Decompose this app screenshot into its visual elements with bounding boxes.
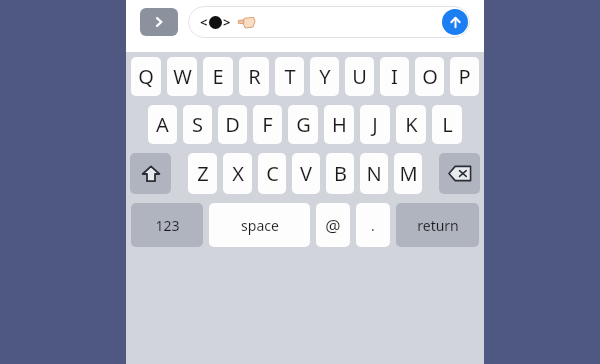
button[interactable]: K	[396, 105, 426, 144]
staticText: K	[405, 111, 418, 138]
staticText: M	[399, 160, 418, 187]
staticText: .	[371, 216, 375, 235]
button[interactable]: return	[396, 203, 479, 247]
button[interactable]: E	[203, 57, 233, 96]
button[interactable]: Shift	[130, 153, 171, 194]
button[interactable]: L	[432, 105, 462, 144]
staticText: V	[300, 160, 312, 187]
button[interactable]: D	[218, 105, 247, 144]
button[interactable]: <	[188, 6, 470, 38]
staticText: P	[458, 63, 471, 90]
button[interactable]: Y	[310, 57, 339, 96]
staticText: F	[262, 111, 273, 138]
button[interactable]: J	[360, 105, 390, 144]
button[interactable]: S	[183, 105, 212, 144]
button[interactable]: C	[258, 153, 286, 194]
staticText: space	[241, 216, 279, 235]
button[interactable]: M	[394, 153, 422, 194]
staticText: Y	[319, 63, 331, 90]
staticText: L	[442, 111, 453, 138]
button[interactable]: 123	[131, 203, 203, 247]
staticText: 123	[155, 216, 180, 235]
staticText: C	[266, 160, 279, 187]
button[interactable]: Z	[188, 153, 217, 194]
staticText: I	[391, 63, 398, 90]
button[interactable]: X	[223, 153, 252, 194]
staticText: Q	[138, 63, 154, 90]
button[interactable]: U	[345, 57, 374, 96]
staticText: B	[334, 160, 347, 187]
button[interactable]: P	[450, 57, 479, 96]
staticText: G	[296, 111, 311, 138]
button[interactable]: .	[356, 203, 390, 247]
button[interactable]: F	[253, 105, 282, 144]
button[interactable]: Expand apps	[140, 8, 178, 36]
staticText: T	[284, 63, 296, 90]
button[interactable]: Backspace	[439, 153, 480, 194]
button[interactable]: H	[324, 105, 354, 144]
staticText: A	[156, 111, 169, 138]
button[interactable]: T	[275, 57, 304, 96]
button[interactable]: V	[292, 153, 320, 194]
staticText: S	[192, 111, 203, 138]
button[interactable]: A	[148, 105, 177, 144]
button[interactable]: B	[326, 153, 354, 194]
button[interactable]: N	[360, 153, 388, 194]
staticText: H	[332, 111, 347, 138]
button[interactable]: O	[415, 57, 444, 96]
staticText: O	[422, 63, 438, 90]
button[interactable]: G	[288, 105, 318, 144]
staticText: return	[417, 216, 459, 235]
staticText: @	[325, 214, 341, 237]
staticText: U	[352, 63, 367, 90]
staticText: N	[366, 160, 382, 187]
staticText: R	[248, 63, 261, 90]
button[interactable]: Q	[131, 57, 161, 96]
staticText: <	[200, 13, 208, 31]
button[interactable]: space	[209, 203, 310, 247]
staticText: X	[232, 160, 244, 187]
staticText: >	[223, 13, 231, 31]
button[interactable]: Send	[442, 9, 468, 35]
staticText: Z	[197, 160, 209, 187]
staticText: J	[372, 111, 378, 138]
staticText: W	[173, 63, 192, 90]
staticText: E	[212, 63, 224, 90]
button[interactable]: @	[316, 203, 350, 247]
staticText: D	[225, 111, 240, 138]
button[interactable]: I	[380, 57, 409, 96]
button[interactable]: W	[167, 57, 197, 96]
button[interactable]: R	[239, 57, 269, 96]
